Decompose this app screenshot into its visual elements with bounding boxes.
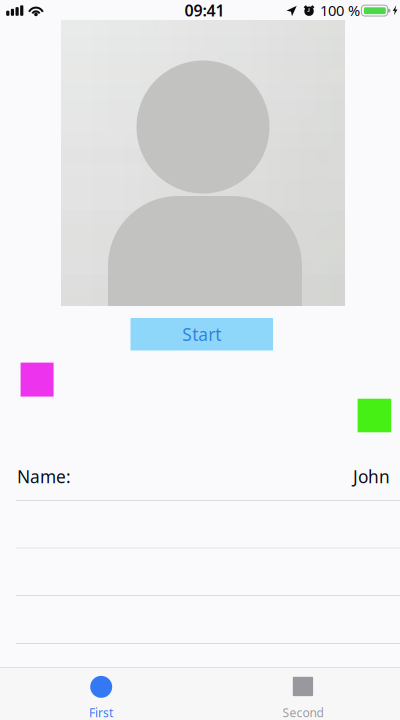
staticText: John <box>353 465 390 488</box>
button[interactable]: Second <box>200 667 400 720</box>
button[interactable]: First <box>0 667 200 720</box>
staticText: 09:41 <box>184 0 224 21</box>
button[interactable]: Name: <box>0 453 400 500</box>
button[interactable]: Start <box>130 318 273 350</box>
staticText: Second <box>282 704 323 720</box>
staticText: Start <box>182 323 221 346</box>
staticText: Name: <box>17 465 71 488</box>
staticText: First <box>89 704 113 720</box>
staticText: 100 % <box>320 1 360 20</box>
